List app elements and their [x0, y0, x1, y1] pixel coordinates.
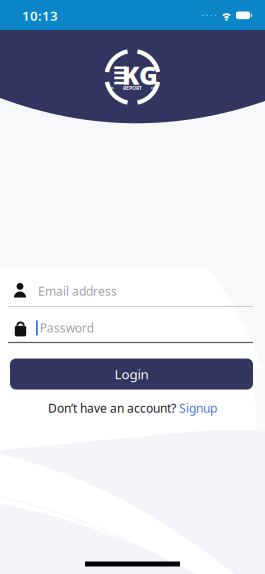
staticText: REPORT [123, 84, 142, 92]
button[interactable]: Email address [8, 281, 253, 307]
staticText: KG [122, 58, 158, 92]
button[interactable]: Password [8, 318, 253, 343]
staticText: 10:13 [22, 7, 58, 24]
staticText: Login [114, 365, 148, 383]
staticText: Signup [179, 400, 217, 416]
button[interactable]: Signup [179, 400, 217, 416]
staticText: Email address [38, 283, 117, 299]
staticText: Don’t have an account? [48, 400, 176, 416]
button[interactable]: Login [10, 358, 253, 389]
staticText: Password [40, 320, 94, 336]
